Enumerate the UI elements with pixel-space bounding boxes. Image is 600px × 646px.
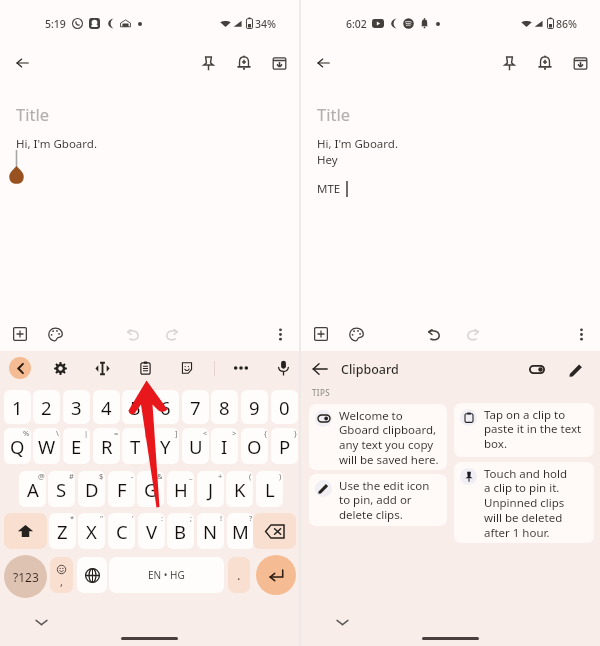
button[interactable]: Redo: [460, 321, 486, 347]
button[interactable]: Touch and hold a clip to pin it. Unpinne…: [454, 462, 594, 543]
staticText: ;: [190, 513, 193, 523]
button[interactable]: Reminder: [530, 48, 560, 78]
button[interactable]: 7: [182, 390, 209, 424]
button[interactable]: EN • HG: [109, 557, 224, 593]
button[interactable]: Switch language: [77, 557, 107, 593]
button[interactable]: Enter: [256, 555, 296, 595]
button[interactable]: X: [78, 513, 105, 549]
button[interactable]: .: [228, 557, 250, 593]
staticText: _: [189, 471, 193, 481]
button[interactable]: Undo: [420, 321, 446, 347]
button[interactable]: 5: [122, 390, 149, 424]
button[interactable]: M: [227, 513, 254, 549]
button[interactable]: O: [241, 428, 268, 464]
button[interactable]: Backspace: [253, 513, 296, 549]
button[interactable]: 6: [152, 390, 179, 424]
staticText: +: [218, 471, 223, 481]
button[interactable]: Toggle clipboard: [524, 357, 549, 382]
button[interactable]: Back: [308, 48, 338, 78]
button[interactable]: Voice input: [271, 356, 295, 380]
button[interactable]: Y: [152, 428, 179, 464]
button[interactable]: Add: [7, 321, 33, 347]
staticText: T: [130, 434, 141, 459]
button[interactable]: Emoji and comma: [50, 557, 73, 593]
button[interactable]: G: [137, 471, 164, 507]
staticText: ]: [175, 428, 178, 438]
button[interactable]: Back: [7, 48, 37, 78]
button[interactable]: L: [256, 471, 283, 507]
button[interactable]: F: [108, 471, 135, 507]
staticText: |: [84, 428, 89, 438]
button[interactable]: More options: [267, 321, 293, 347]
button[interactable]: 9: [241, 390, 268, 424]
button[interactable]: P: [271, 428, 298, 464]
button[interactable]: T: [122, 428, 149, 464]
button[interactable]: Q: [4, 428, 31, 464]
button[interactable]: W: [33, 428, 60, 464]
staticText: 1: [12, 395, 23, 420]
staticText: Title: [16, 103, 49, 125]
button[interactable]: ?123: [4, 555, 47, 598]
button[interactable]: Pin: [494, 48, 524, 78]
button[interactable]: Shift: [4, 513, 47, 549]
button[interactable]: Palette: [343, 321, 369, 347]
button[interactable]: Archive: [264, 48, 294, 78]
staticText: :: [161, 513, 164, 523]
button[interactable]: Add: [308, 321, 334, 347]
button[interactable]: C: [108, 513, 135, 549]
staticText: Z: [57, 519, 68, 544]
button[interactable]: Collapse keyboard: [331, 611, 353, 633]
button[interactable]: Use the edit icon to pin, add or delete …: [309, 474, 447, 526]
button[interactable]: Archive: [565, 48, 595, 78]
button[interactable]: Redo: [159, 321, 185, 347]
button[interactable]: Collapse keyboard: [30, 611, 52, 633]
staticText: 8: [219, 395, 230, 420]
button[interactable]: E: [63, 428, 90, 464]
button[interactable]: Welcome to Gboard clipboard, any text yo…: [309, 404, 447, 470]
staticText: O: [247, 434, 262, 459]
button[interactable]: K: [226, 471, 253, 507]
button[interactable]: Clipboard: [133, 356, 157, 380]
button[interactable]: Tap on a clip to paste it in the text bo…: [454, 403, 594, 457]
staticText: P: [279, 434, 291, 459]
button[interactable]: R: [93, 428, 120, 464]
button[interactable]: Back: [308, 357, 332, 381]
staticText: 5: [130, 395, 141, 420]
button[interactable]: 2: [33, 390, 60, 424]
staticText: 34%: [255, 17, 276, 31]
button[interactable]: Z: [49, 513, 76, 549]
button[interactable]: Reminder: [229, 48, 259, 78]
button[interactable]: 4: [93, 390, 120, 424]
staticText: ': [132, 513, 134, 523]
button[interactable]: 3: [63, 390, 90, 424]
button[interactable]: U: [182, 428, 209, 464]
button[interactable]: H: [167, 471, 194, 507]
button[interactable]: Palette: [42, 321, 68, 347]
button[interactable]: D: [78, 471, 105, 507]
button[interactable]: 1: [4, 390, 31, 424]
button[interactable]: Undo: [119, 321, 145, 347]
button[interactable]: More: [229, 356, 253, 380]
staticText: &: [157, 471, 163, 481]
button[interactable]: S: [48, 471, 75, 507]
button[interactable]: 0: [271, 390, 298, 424]
button[interactable]: Pin: [193, 48, 223, 78]
button[interactable]: Settings: [48, 356, 72, 380]
button[interactable]: Back to keyboard: [9, 357, 31, 379]
button[interactable]: N: [197, 513, 224, 549]
button[interactable]: A: [19, 471, 46, 507]
button[interactable]: 8: [211, 390, 238, 424]
staticText: Hi, I'm Gboard.: [317, 136, 398, 152]
staticText: TIPS: [312, 387, 330, 398]
button[interactable]: More options: [568, 321, 594, 347]
button[interactable]: J: [197, 471, 224, 507]
button[interactable]: V: [138, 513, 165, 549]
button[interactable]: B: [167, 513, 194, 549]
staticText: %: [23, 428, 30, 438]
button[interactable]: Text editing: [90, 356, 114, 380]
button[interactable]: Stickers: [175, 356, 199, 380]
button[interactable]: Edit: [563, 357, 588, 382]
button[interactable]: I: [211, 428, 238, 464]
staticText: X: [86, 519, 97, 544]
staticText: 0: [279, 395, 290, 420]
